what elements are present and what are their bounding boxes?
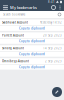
staticText: 8:41 — [48, 0, 55, 4]
staticText: Copy to clipboard — [19, 65, 45, 69]
staticText: 20 Sep 2023 — [43, 34, 62, 37]
staticText: Copy to clipboard — [19, 39, 45, 43]
staticText: Omnibegs Account — [2, 59, 29, 63]
button[interactable]: Svabhavat Account — [0, 19, 64, 31]
button[interactable]: Omnibegs Account — [0, 58, 64, 70]
staticText: Sonatg Account — [2, 46, 24, 50]
button[interactable]: Parrett Account — [0, 32, 64, 44]
staticText: 14 Sep 2023 — [43, 46, 62, 50]
button[interactable]: More options — [57, 4, 63, 11]
staticText: 2 Sep 2023 — [45, 59, 62, 63]
button[interactable]: Add bookmark — [51, 86, 63, 98]
button[interactable]: Sonatg Account — [0, 45, 64, 57]
button[interactable]: Search bookmarks — [0, 11, 64, 18]
staticText: My bookmarks — [10, 5, 37, 10]
staticText: Copy to clipboard — [19, 27, 45, 30]
button[interactable]: Menu — [1, 4, 10, 11]
staticText: Copy to clipboard — [19, 52, 45, 56]
button[interactable]: Search — [50, 4, 57, 11]
staticText: Parrett Account — [2, 34, 24, 37]
staticText: Yesterday 14:02 — [40, 21, 62, 24]
staticText: Svabhavat Account — [2, 21, 28, 24]
staticText: Search bookmarks — [3, 13, 25, 16]
